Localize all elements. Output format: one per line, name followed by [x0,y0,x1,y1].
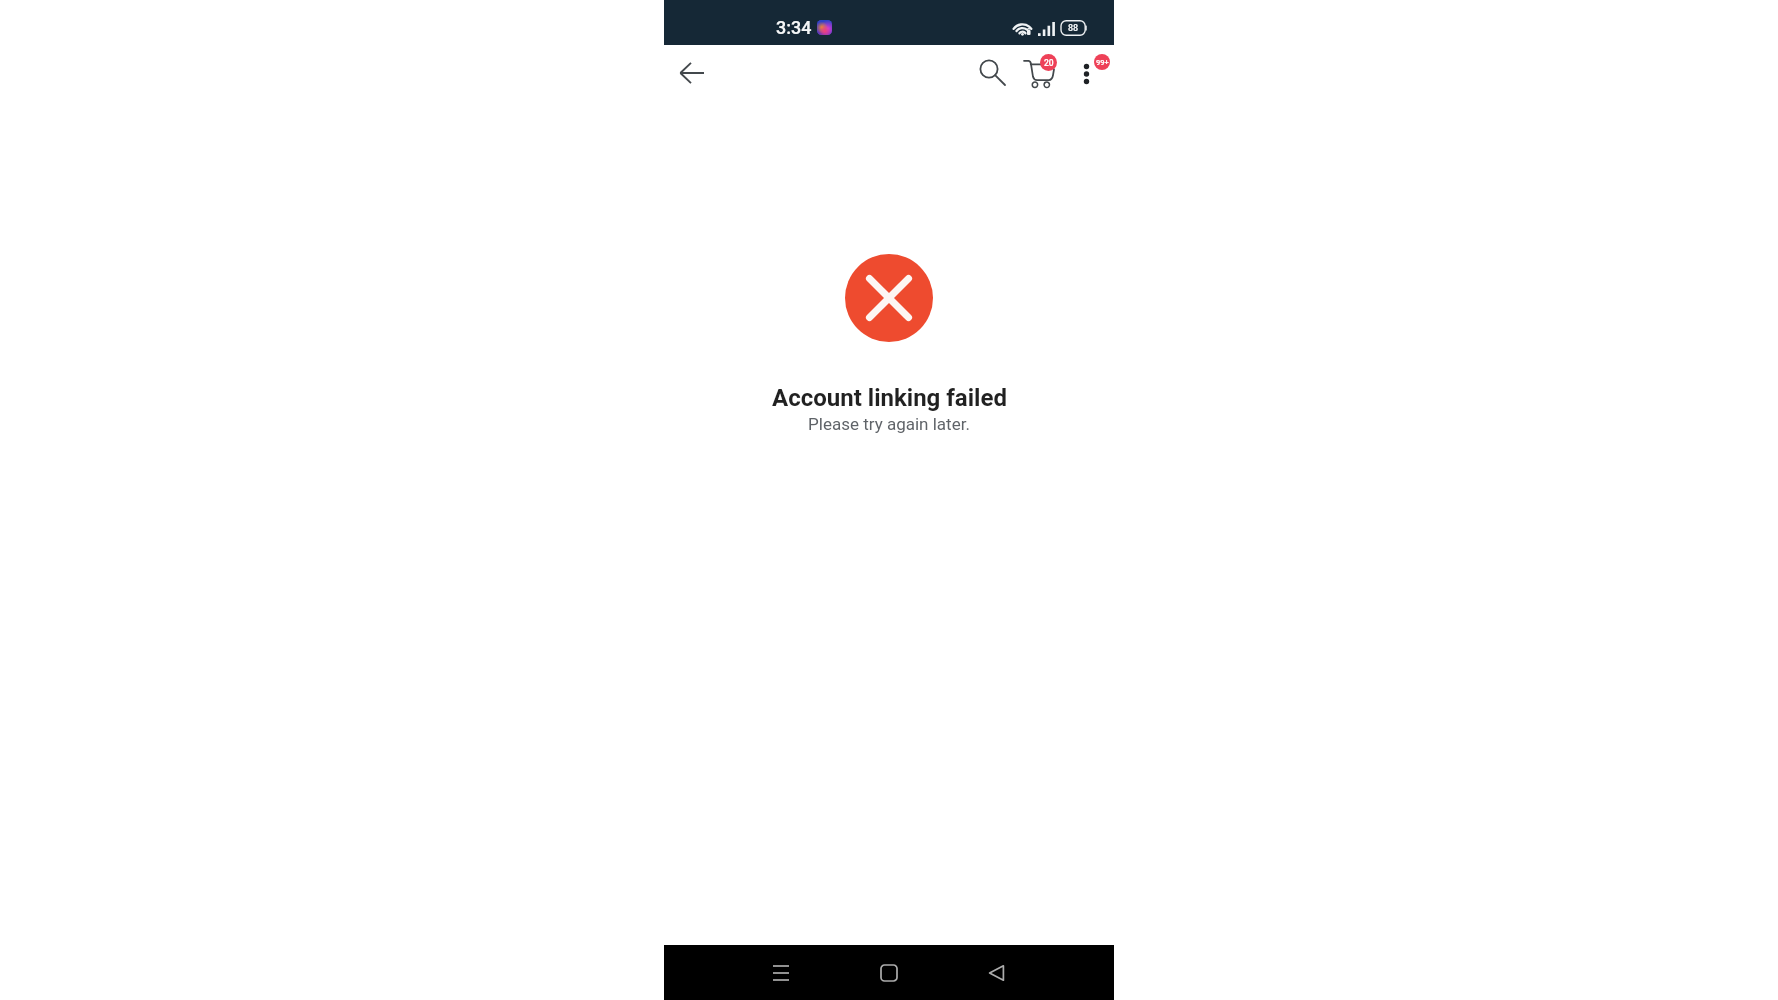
button[interactable]: Back [668,49,716,97]
staticText: 3:34 [776,17,812,38]
button[interactable]: Search [965,49,1013,97]
staticText: 20 [1044,58,1054,68]
staticText: Account linking failed [772,384,1007,412]
button[interactable]: Recent apps [757,949,805,997]
staticText: 99+ [1096,58,1109,67]
button[interactable]: Back [972,949,1020,997]
button[interactable]: More options, 99+ notifications [1062,50,1110,98]
button[interactable]: Shopping cart, 20 items [1015,50,1063,98]
staticText: 88 [1068,23,1079,34]
button[interactable]: Home [865,949,913,997]
staticText: Please try again later. [808,414,970,434]
